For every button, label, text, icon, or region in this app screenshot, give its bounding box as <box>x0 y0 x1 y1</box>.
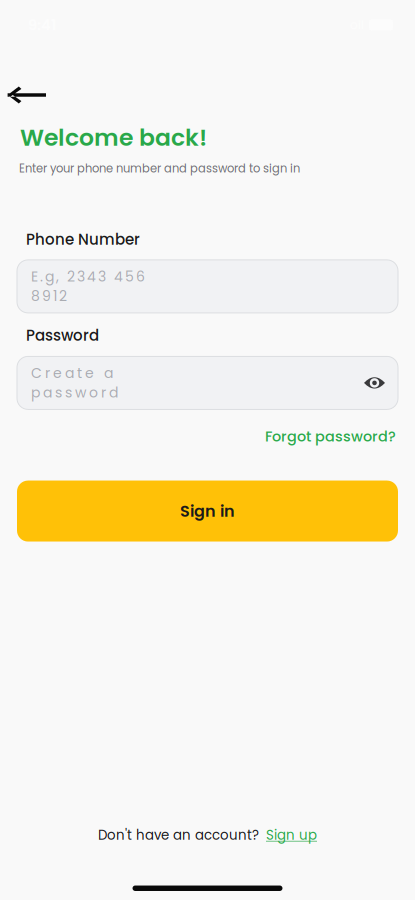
button[interactable]: Sign in <box>17 481 398 542</box>
button[interactable]: Back <box>0 81 58 109</box>
button[interactable]: Forgot password? <box>265 426 396 447</box>
staticText: Welcome back! <box>20 121 207 154</box>
staticText: Sign up <box>266 826 317 844</box>
staticText: Sign in <box>180 500 235 522</box>
staticText: Phone Number <box>26 229 140 250</box>
staticText: Forgot password? <box>265 426 396 447</box>
staticText: Create a password <box>31 363 118 402</box>
button[interactable]: Sign up <box>266 826 317 844</box>
staticText: Password <box>26 325 99 346</box>
staticText: E.g, 2343 456 8912 <box>31 267 145 306</box>
staticText: Don't have an account? <box>98 826 259 844</box>
staticText: Enter your phone number and password to … <box>19 160 300 176</box>
